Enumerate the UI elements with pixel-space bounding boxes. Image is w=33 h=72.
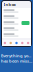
button[interactable]: Mail — [2, 40, 8, 46]
staticText: has been missing — [1, 58, 32, 64]
button[interactable]: More — [25, 40, 31, 46]
staticText: Inbox — [3, 2, 15, 7]
button[interactable]: Search — [19, 40, 25, 46]
button[interactable]: Files — [8, 40, 14, 46]
staticText: Everything your inbox — [1, 53, 32, 58]
button[interactable]: Home — [14, 40, 19, 46]
